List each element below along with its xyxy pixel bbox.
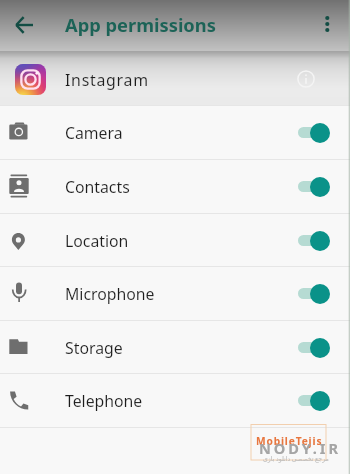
staticText: App permissions <box>65 12 216 37</box>
button[interactable]: Location <box>0 213 350 267</box>
button[interactable]: Microphone <box>0 266 350 320</box>
staticText: مرجع تخصصی دانلود بازی <box>263 454 329 462</box>
button[interactable]: Camera permission toggle <box>296 120 336 146</box>
button[interactable]: App info <box>291 64 321 94</box>
button[interactable]: Instagram <box>0 51 350 106</box>
button[interactable]: Telephone <box>0 373 350 427</box>
button[interactable]: Storage <box>0 320 350 374</box>
button[interactable]: Contacts <box>0 159 350 213</box>
button[interactable]: Contacts permission toggle <box>296 174 336 200</box>
button[interactable]: Storage permission toggle <box>296 335 336 361</box>
staticText: Location <box>65 230 129 252</box>
button[interactable]: More options <box>311 8 343 40</box>
button[interactable]: Camera <box>0 105 350 159</box>
staticText: MobileTejis <box>256 434 323 448</box>
staticText: Telephone <box>65 390 143 412</box>
button[interactable]: Back <box>8 9 40 41</box>
staticText: Storage <box>65 337 123 359</box>
staticText: Camera <box>65 122 123 144</box>
staticText: Microphone <box>65 283 155 305</box>
staticText: Contacts <box>65 176 130 198</box>
staticText: NODY.IR <box>259 438 341 458</box>
button[interactable]: Location permission toggle <box>296 228 336 254</box>
button[interactable]: Microphone permission toggle <box>296 281 336 307</box>
button[interactable]: Telephone permission toggle <box>296 388 336 414</box>
staticText: Instagram <box>65 69 149 91</box>
